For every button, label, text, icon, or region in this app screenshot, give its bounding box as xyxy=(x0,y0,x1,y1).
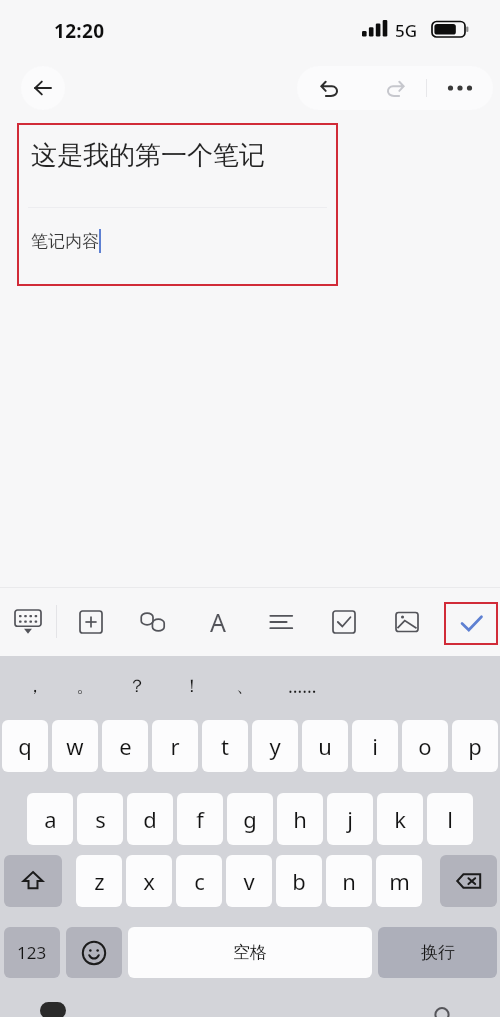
button[interactable]: Backspace xyxy=(440,855,497,907)
button[interactable]: Back xyxy=(21,66,65,110)
staticText: f xyxy=(196,804,204,834)
staticText: ， xyxy=(26,675,44,698)
button[interactable]: s xyxy=(77,793,123,845)
staticText: 这是我的第一个笔记 xyxy=(31,139,265,172)
button[interactable]: v xyxy=(226,855,272,907)
staticText: …… xyxy=(288,674,317,699)
button[interactable]: g xyxy=(227,793,273,845)
button[interactable]: h xyxy=(277,793,323,845)
button[interactable]: l xyxy=(427,793,473,845)
button[interactable]: 笔记内容 xyxy=(31,229,101,253)
staticText: a xyxy=(44,804,57,834)
staticText: 笔记内容 xyxy=(31,231,99,252)
button[interactable]: Link xyxy=(130,599,175,644)
staticText: j xyxy=(347,804,353,834)
staticText: w xyxy=(66,731,84,761)
button[interactable]: 。 xyxy=(68,670,102,702)
button[interactable]: Undo xyxy=(297,66,363,110)
staticText: 12:20 xyxy=(54,18,105,44)
staticText: r xyxy=(170,731,180,761)
button[interactable]: 、 xyxy=(228,670,262,702)
button[interactable]: 空格 xyxy=(128,927,372,978)
staticText: 5G xyxy=(395,19,418,42)
staticText: 空格 xyxy=(233,942,267,963)
button[interactable]: q xyxy=(2,720,48,772)
staticText: ？ xyxy=(128,675,146,698)
staticText: d xyxy=(143,804,157,834)
button[interactable]: d xyxy=(127,793,173,845)
staticText: 、 xyxy=(236,675,254,698)
staticText: s xyxy=(95,804,106,834)
button[interactable]: ？ xyxy=(120,670,154,702)
staticText: 。 xyxy=(76,675,94,698)
button[interactable]: Done xyxy=(449,601,494,646)
button[interactable]: Text style xyxy=(195,599,240,644)
staticText: q xyxy=(18,731,32,761)
button[interactable]: a xyxy=(27,793,73,845)
staticText: m xyxy=(389,866,410,896)
staticText: h xyxy=(293,804,307,834)
button[interactable]: k xyxy=(377,793,423,845)
staticText: b xyxy=(292,866,306,896)
button[interactable]: j xyxy=(327,793,373,845)
button[interactable]: ， xyxy=(18,670,52,702)
staticText: ！ xyxy=(183,675,201,698)
button[interactable]: ！ xyxy=(175,670,209,702)
staticText: c xyxy=(194,866,205,896)
button[interactable]: Redo xyxy=(363,66,426,110)
button[interactable]: Shift xyxy=(4,855,62,907)
button[interactable]: c xyxy=(176,855,222,907)
staticText: v xyxy=(243,866,255,896)
staticText: i xyxy=(372,731,378,761)
button[interactable]: t xyxy=(202,720,248,772)
button[interactable]: y xyxy=(252,720,298,772)
staticText: g xyxy=(243,804,257,834)
staticText: u xyxy=(318,731,332,761)
button[interactable]: e xyxy=(102,720,148,772)
button[interactable]: r xyxy=(152,720,198,772)
staticText: p xyxy=(468,731,482,761)
staticText: x xyxy=(143,866,155,896)
button[interactable]: b xyxy=(276,855,322,907)
button[interactable]: f xyxy=(177,793,223,845)
staticText: A xyxy=(210,605,226,639)
button[interactable]: w xyxy=(52,720,98,772)
button[interactable]: Hide keyboard xyxy=(5,599,50,644)
button[interactable]: 123 xyxy=(4,927,60,978)
button[interactable]: i xyxy=(352,720,398,772)
button[interactable]: …… xyxy=(285,670,319,702)
staticText: y xyxy=(269,731,281,761)
button[interactable]: More options xyxy=(427,66,493,110)
staticText: o xyxy=(418,731,432,761)
button[interactable]: u xyxy=(302,720,348,772)
staticText: t xyxy=(221,731,229,761)
button[interactable]: p xyxy=(452,720,498,772)
staticText: n xyxy=(342,866,356,896)
button[interactable]: Align xyxy=(258,599,303,644)
staticText: 123 xyxy=(17,941,47,964)
staticText: e xyxy=(119,731,132,761)
button[interactable]: Checklist xyxy=(321,599,366,644)
button[interactable]: x xyxy=(126,855,172,907)
staticText: z xyxy=(94,866,105,896)
button[interactable]: o xyxy=(402,720,448,772)
button[interactable]: Emoji xyxy=(66,927,122,978)
button[interactable]: n xyxy=(326,855,372,907)
staticText: 换行 xyxy=(421,942,455,963)
button[interactable]: 换行 xyxy=(378,927,497,978)
button[interactable]: 这是我的第一个笔记 xyxy=(31,139,265,172)
button[interactable]: m xyxy=(376,855,422,907)
staticText: k xyxy=(394,804,406,834)
button[interactable]: z xyxy=(76,855,122,907)
button[interactable]: Insert image xyxy=(384,599,429,644)
staticText: l xyxy=(447,804,453,834)
button[interactable]: Insert xyxy=(68,599,113,644)
